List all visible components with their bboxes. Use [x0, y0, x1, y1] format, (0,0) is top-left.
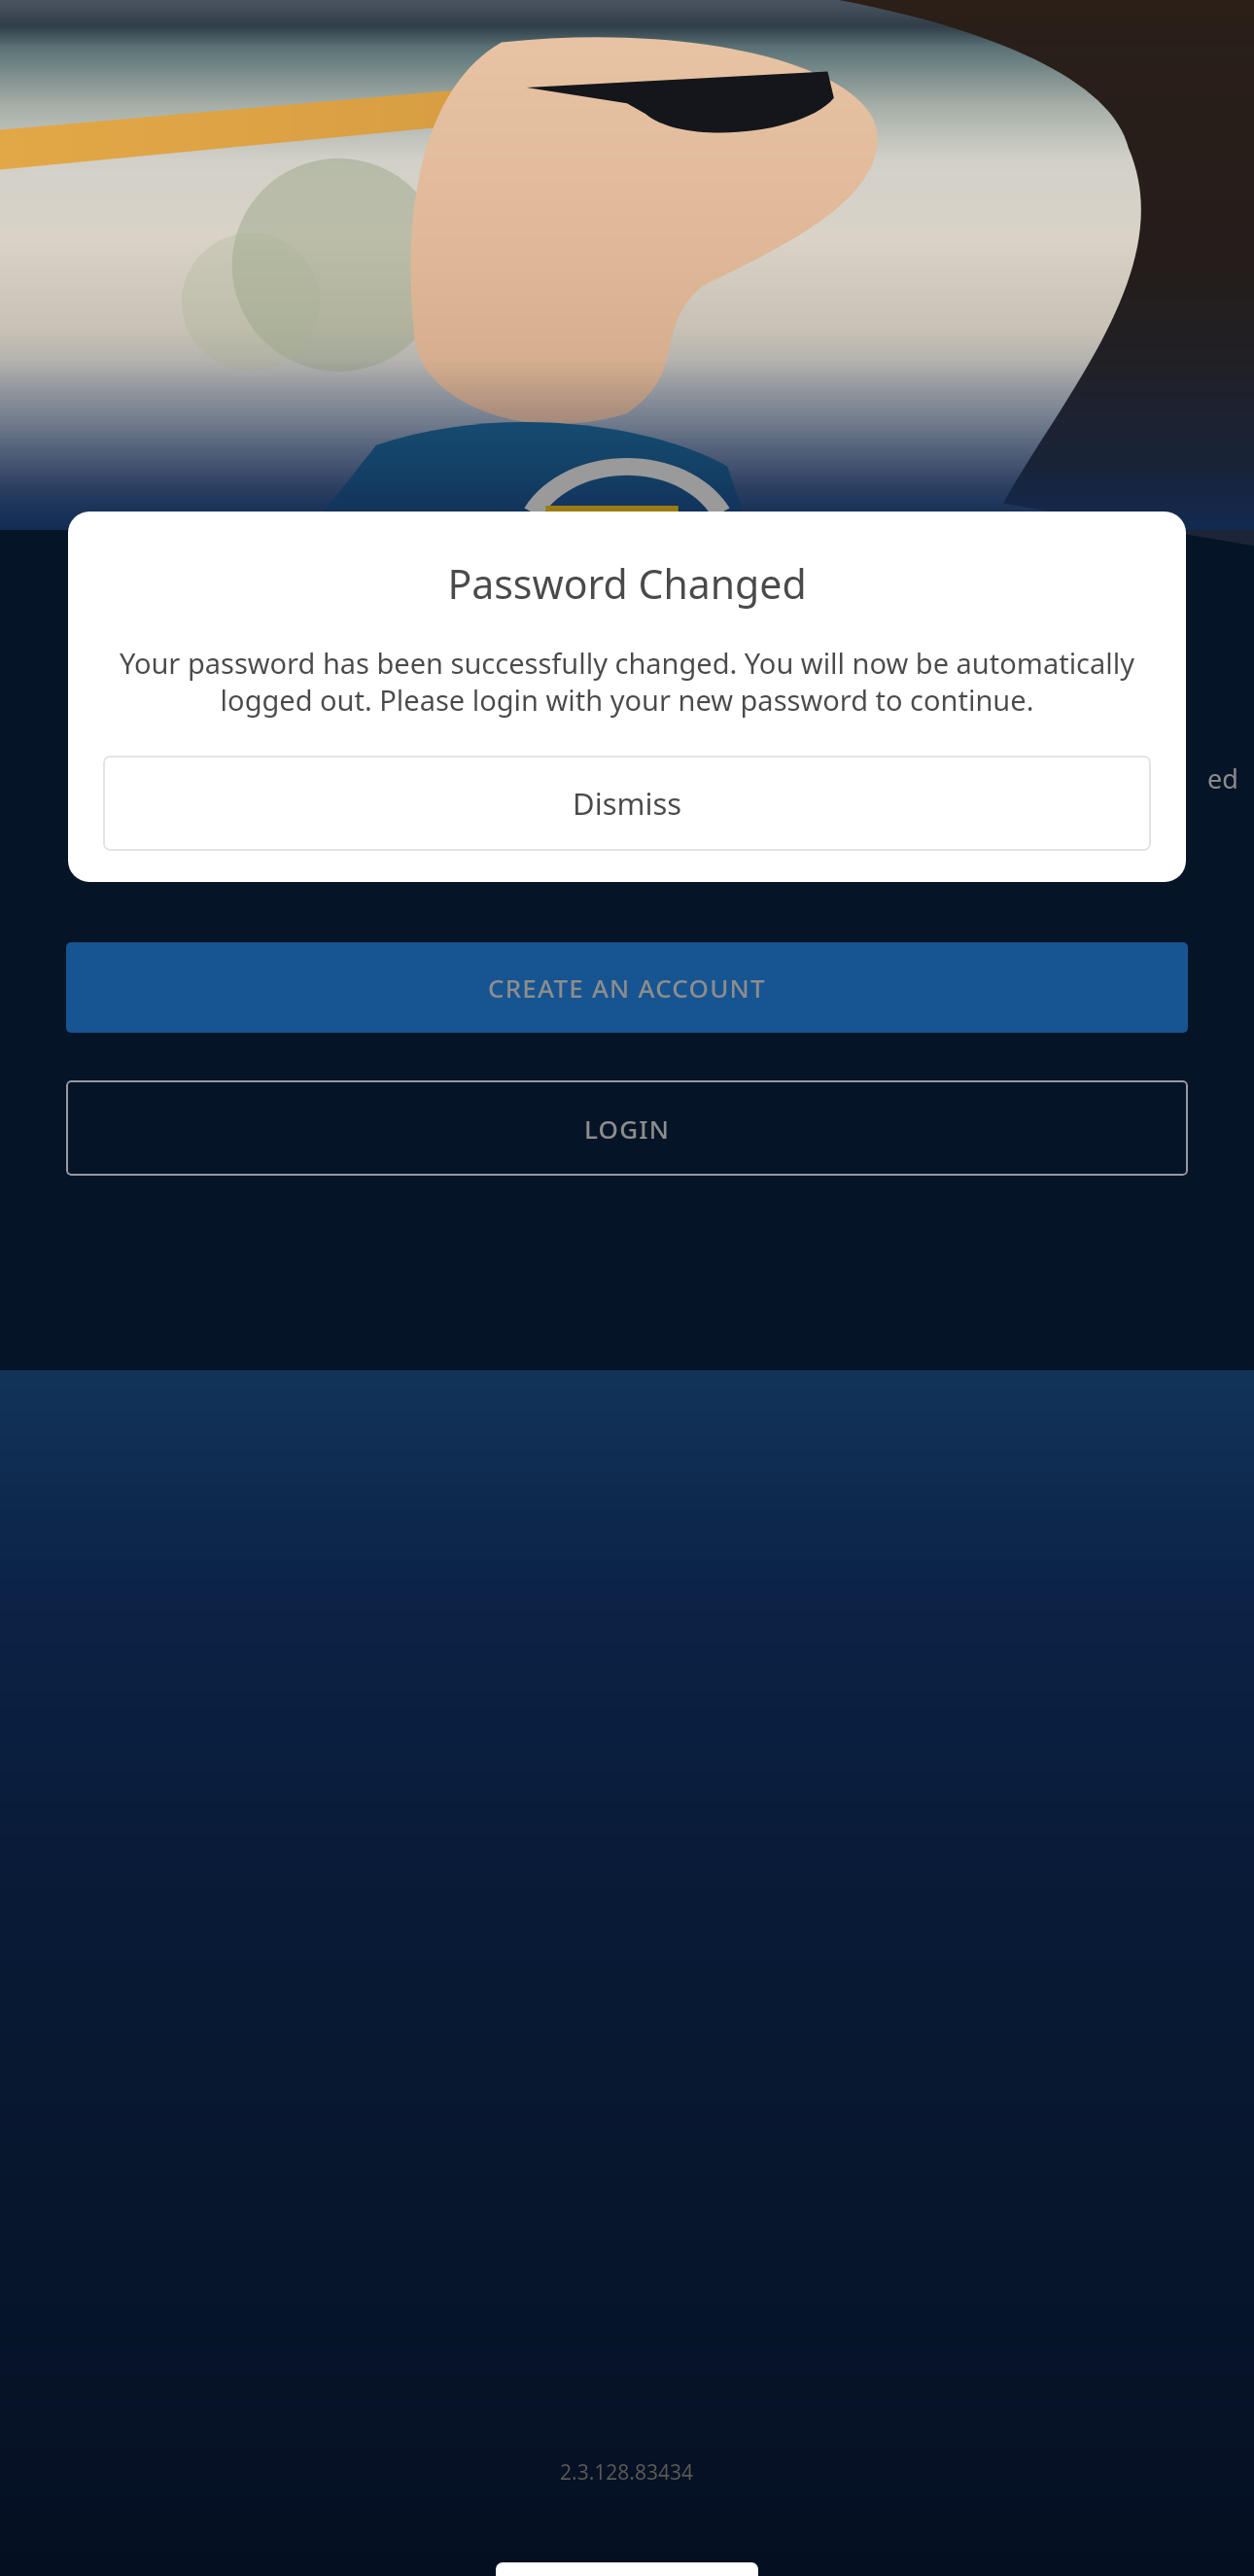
other: Brand logo — [520, 436, 734, 552]
staticText: LOGIN — [584, 1112, 671, 1146]
button[interactable]: LOGIN — [66, 1080, 1188, 1176]
staticText: 2.3.128.83434 — [560, 2458, 694, 2487]
staticText: Dismiss — [573, 783, 682, 824]
button[interactable]: Dismiss — [103, 756, 1151, 851]
staticText: CREATE AN ACCOUNT — [488, 970, 766, 1005]
staticText: Password Changed — [447, 556, 807, 611]
staticText: ed — [1207, 760, 1238, 796]
button[interactable]: CREATE AN ACCOUNT — [66, 942, 1188, 1033]
staticText: Your password has been successfully chan… — [103, 644, 1151, 719]
